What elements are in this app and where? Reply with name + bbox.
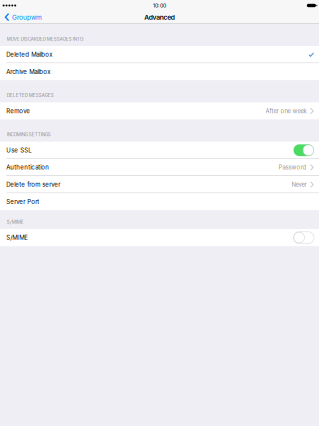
button[interactable]: S/MIME — [0, 229, 319, 246]
staticText: Server Port — [6, 198, 39, 205]
staticText: Advanced — [144, 13, 175, 21]
button[interactable]: Use SSL — [0, 142, 319, 159]
staticText: S/MIME — [6, 234, 28, 241]
button[interactable]: Remove — [0, 102, 319, 120]
staticText: Never — [292, 181, 307, 188]
staticText: Archive Mailbox — [6, 68, 50, 75]
button[interactable]: Groupwm — [0, 11, 42, 24]
staticText: INCOMING SETTINGS — [7, 132, 51, 137]
button[interactable]: Server Port — [0, 193, 319, 210]
button[interactable]: Deleted Mailbox — [0, 46, 319, 63]
staticText: Password — [279, 164, 307, 171]
staticText: After one week — [266, 107, 307, 115]
staticText: S/MIME — [7, 219, 24, 225]
staticText: Use SSL — [6, 146, 31, 154]
button[interactable]: Delete from server — [0, 176, 319, 193]
staticText: MOVE DISCARDED MESSAGES INTO: — [7, 36, 84, 42]
staticText: Groupwm — [12, 13, 42, 21]
button[interactable]: Archive Mailbox — [0, 63, 319, 80]
button[interactable]: Authentication — [0, 159, 319, 176]
staticText: DELETED MESSAGES — [7, 93, 54, 98]
staticText: Authentication — [6, 164, 49, 171]
staticText: Deleted Mailbox — [6, 51, 52, 58]
staticText: Delete from server — [6, 181, 60, 188]
staticText: 10:00 — [153, 2, 166, 9]
staticText: Remove — [6, 107, 30, 115]
